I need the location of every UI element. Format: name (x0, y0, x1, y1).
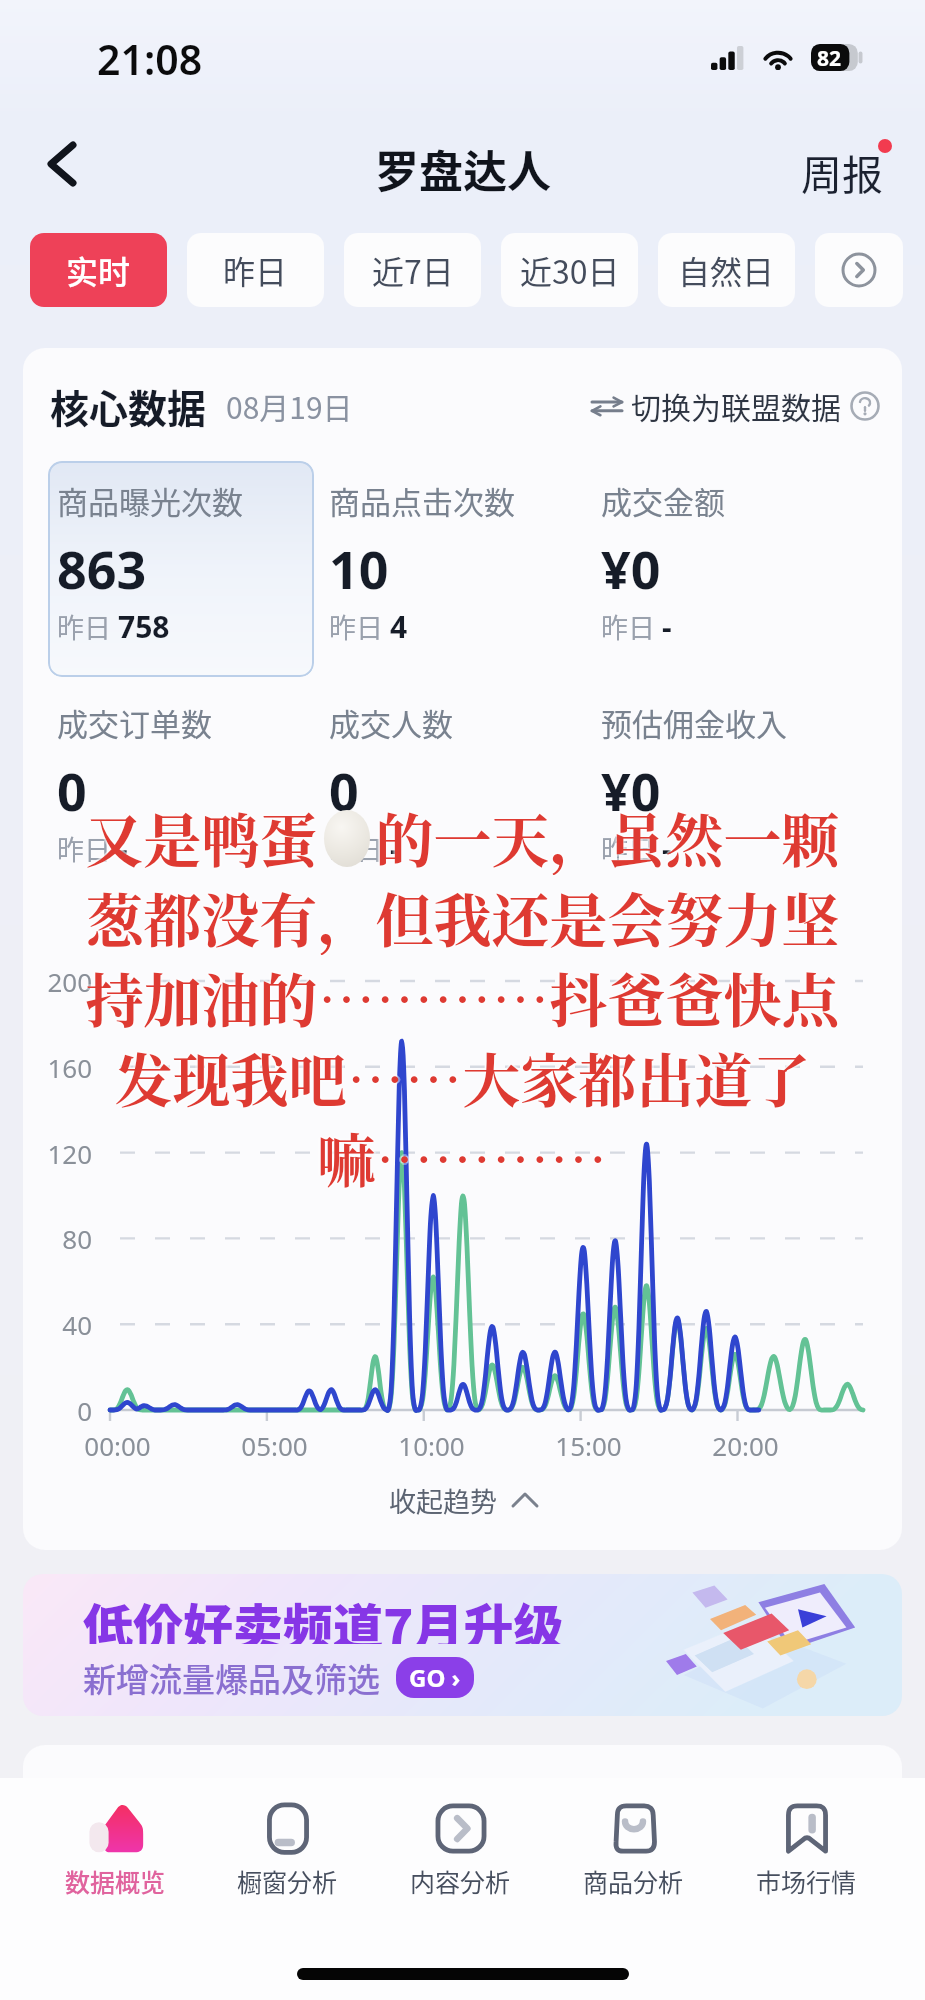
staticText: - (662, 606, 672, 646)
staticText: 持加油的…………抖爸爸快点 (87, 955, 842, 1035)
staticText: 发现我吧……大家都出道了 (116, 1035, 813, 1115)
staticText: 昨日 (57, 607, 118, 646)
staticText: 周报 (801, 142, 883, 201)
staticText: 发现我吧……大家都出道了 (114, 1033, 811, 1113)
staticText: 葱都没有，但我还是会努力坚 (85, 877, 840, 957)
staticText: 10:00 (398, 1428, 465, 1463)
staticText: 嘛………… (317, 1117, 608, 1197)
staticText: 收起趋势 (389, 1481, 497, 1520)
staticText: - (662, 828, 672, 868)
staticText: 发现我吧……大家都出道了 (114, 1037, 811, 1117)
staticText: 成交金额 (601, 478, 725, 522)
staticText: 0 (77, 1393, 92, 1428)
staticText: 昨日 (329, 607, 390, 646)
staticText: 预估佣金收入 (601, 700, 787, 744)
staticText: 罗盘达人 (375, 137, 551, 193)
staticText: 发现我吧……大家都出道了 (114, 1035, 811, 1115)
staticText: 0 (329, 755, 359, 813)
button[interactable]: 近7日 (344, 233, 481, 307)
button[interactable]: 内容分析 (374, 1778, 547, 1920)
staticText: 80 (62, 1221, 92, 1256)
staticText: 商品曝光次数 (57, 478, 243, 522)
staticText: 葱都没有，但我还是会努力坚 (85, 873, 840, 953)
staticText: 近7日 (372, 247, 454, 293)
staticText: 葱都没有，但我还是会努力坚 (83, 875, 838, 955)
staticText: 又是鸭蛋 的一天，虽然一颗 (85, 795, 840, 875)
staticText: 又是鸭蛋 的一天，虽然一颗 (83, 795, 838, 875)
button[interactable]: More date ranges (815, 233, 903, 307)
staticText: 持加油的…………抖爸爸快点 (85, 953, 840, 1033)
staticText: 新增流量爆品及筛选 (83, 1654, 380, 1700)
staticText: 切换为联盟数据 (631, 384, 841, 427)
staticText: 昨日 (223, 247, 288, 293)
staticText: 08月19日 (226, 384, 353, 427)
staticText: 82 (817, 44, 842, 71)
button[interactable]: 商品分析 (547, 1778, 720, 1920)
button[interactable]: 橱窗分析 (201, 1778, 374, 1920)
staticText: 863 (57, 533, 147, 591)
staticText: 160 (47, 1050, 92, 1085)
staticText: 市场行情 (756, 1863, 857, 1899)
button[interactable]: Back (32, 134, 92, 194)
staticText: 实时 (66, 247, 131, 293)
staticText: - (118, 828, 128, 868)
staticText: 嘛………… (317, 1113, 608, 1193)
staticText: 又是鸭蛋 的一天，虽然一颗 (87, 795, 842, 875)
staticText: 昨日 (601, 607, 662, 646)
staticText: 成交人数 (329, 700, 453, 744)
staticText: 40 (62, 1307, 92, 1342)
staticText: 核心数据 (50, 378, 207, 432)
button[interactable]: 市场行情 (720, 1778, 893, 1920)
button[interactable]: 切换为联盟数据 (592, 384, 880, 427)
staticText: 葱都没有，但我还是会努力坚 (85, 875, 840, 955)
button[interactable] (48, 461, 314, 677)
staticText: 内容分析 (410, 1863, 511, 1899)
staticText: 持加油的…………抖爸爸快点 (85, 955, 840, 1035)
staticText: 昨日 (57, 829, 118, 868)
staticText: 20:00 (712, 1428, 779, 1463)
staticText: - (390, 828, 400, 868)
staticText: 发现我吧……大家都出道了 (112, 1035, 809, 1115)
staticText: 15:00 (555, 1428, 622, 1463)
staticText: 嘛………… (315, 1115, 606, 1195)
staticText: 葱都没有，但我还是会努力坚 (87, 875, 842, 955)
staticText: 成交订单数 (57, 700, 212, 744)
staticText: 自然日 (678, 247, 775, 293)
staticText: 120 (47, 1136, 92, 1171)
button[interactable]: 收起趋势 (23, 1478, 902, 1522)
staticText: 00:00 (84, 1428, 151, 1463)
staticText: 商品分析 (583, 1863, 684, 1899)
staticText: 近30日 (520, 247, 620, 293)
staticText: GO › (409, 1661, 461, 1694)
staticText: 昨日 (601, 829, 662, 868)
button[interactable]: 低价好卖频道7月升级 (23, 1574, 902, 1716)
staticText: 昨日 (329, 829, 390, 868)
staticText: 又是鸭蛋 的一天，虽然一颗 (85, 797, 840, 877)
staticText: 数据概览 (65, 1863, 166, 1899)
button[interactable]: 实时 (30, 233, 167, 307)
staticText: 低价好卖频道7月升级 (83, 1588, 564, 1644)
button[interactable]: 周报 (799, 140, 885, 203)
button[interactable]: 昨日 (187, 233, 324, 307)
staticText: 05:00 (241, 1428, 308, 1463)
staticText: 嘛………… (319, 1115, 610, 1195)
staticText: ¥0 (601, 755, 661, 813)
staticText: 0 (57, 755, 87, 813)
button[interactable]: 数据概览 (29, 1778, 201, 1920)
staticText: 嘛………… (317, 1115, 608, 1195)
button[interactable]: 近30日 (501, 233, 638, 307)
staticText: 200 (47, 964, 92, 999)
staticText: 持加油的…………抖爸爸快点 (83, 955, 838, 1035)
staticText: 持加油的…………抖爸爸快点 (85, 957, 840, 1037)
button[interactable]: 自然日 (658, 233, 795, 307)
staticText: 10 (329, 533, 389, 591)
staticText: 4 (390, 606, 408, 646)
staticText: ¥0 (601, 533, 661, 591)
staticText: 橱窗分析 (237, 1863, 338, 1899)
staticText: 商品点击次数 (329, 478, 515, 522)
staticText: 又是鸭蛋 的一天，虽然一颗 (85, 793, 840, 873)
staticText: 758 (118, 606, 170, 646)
staticText: 21:08 (97, 31, 203, 87)
